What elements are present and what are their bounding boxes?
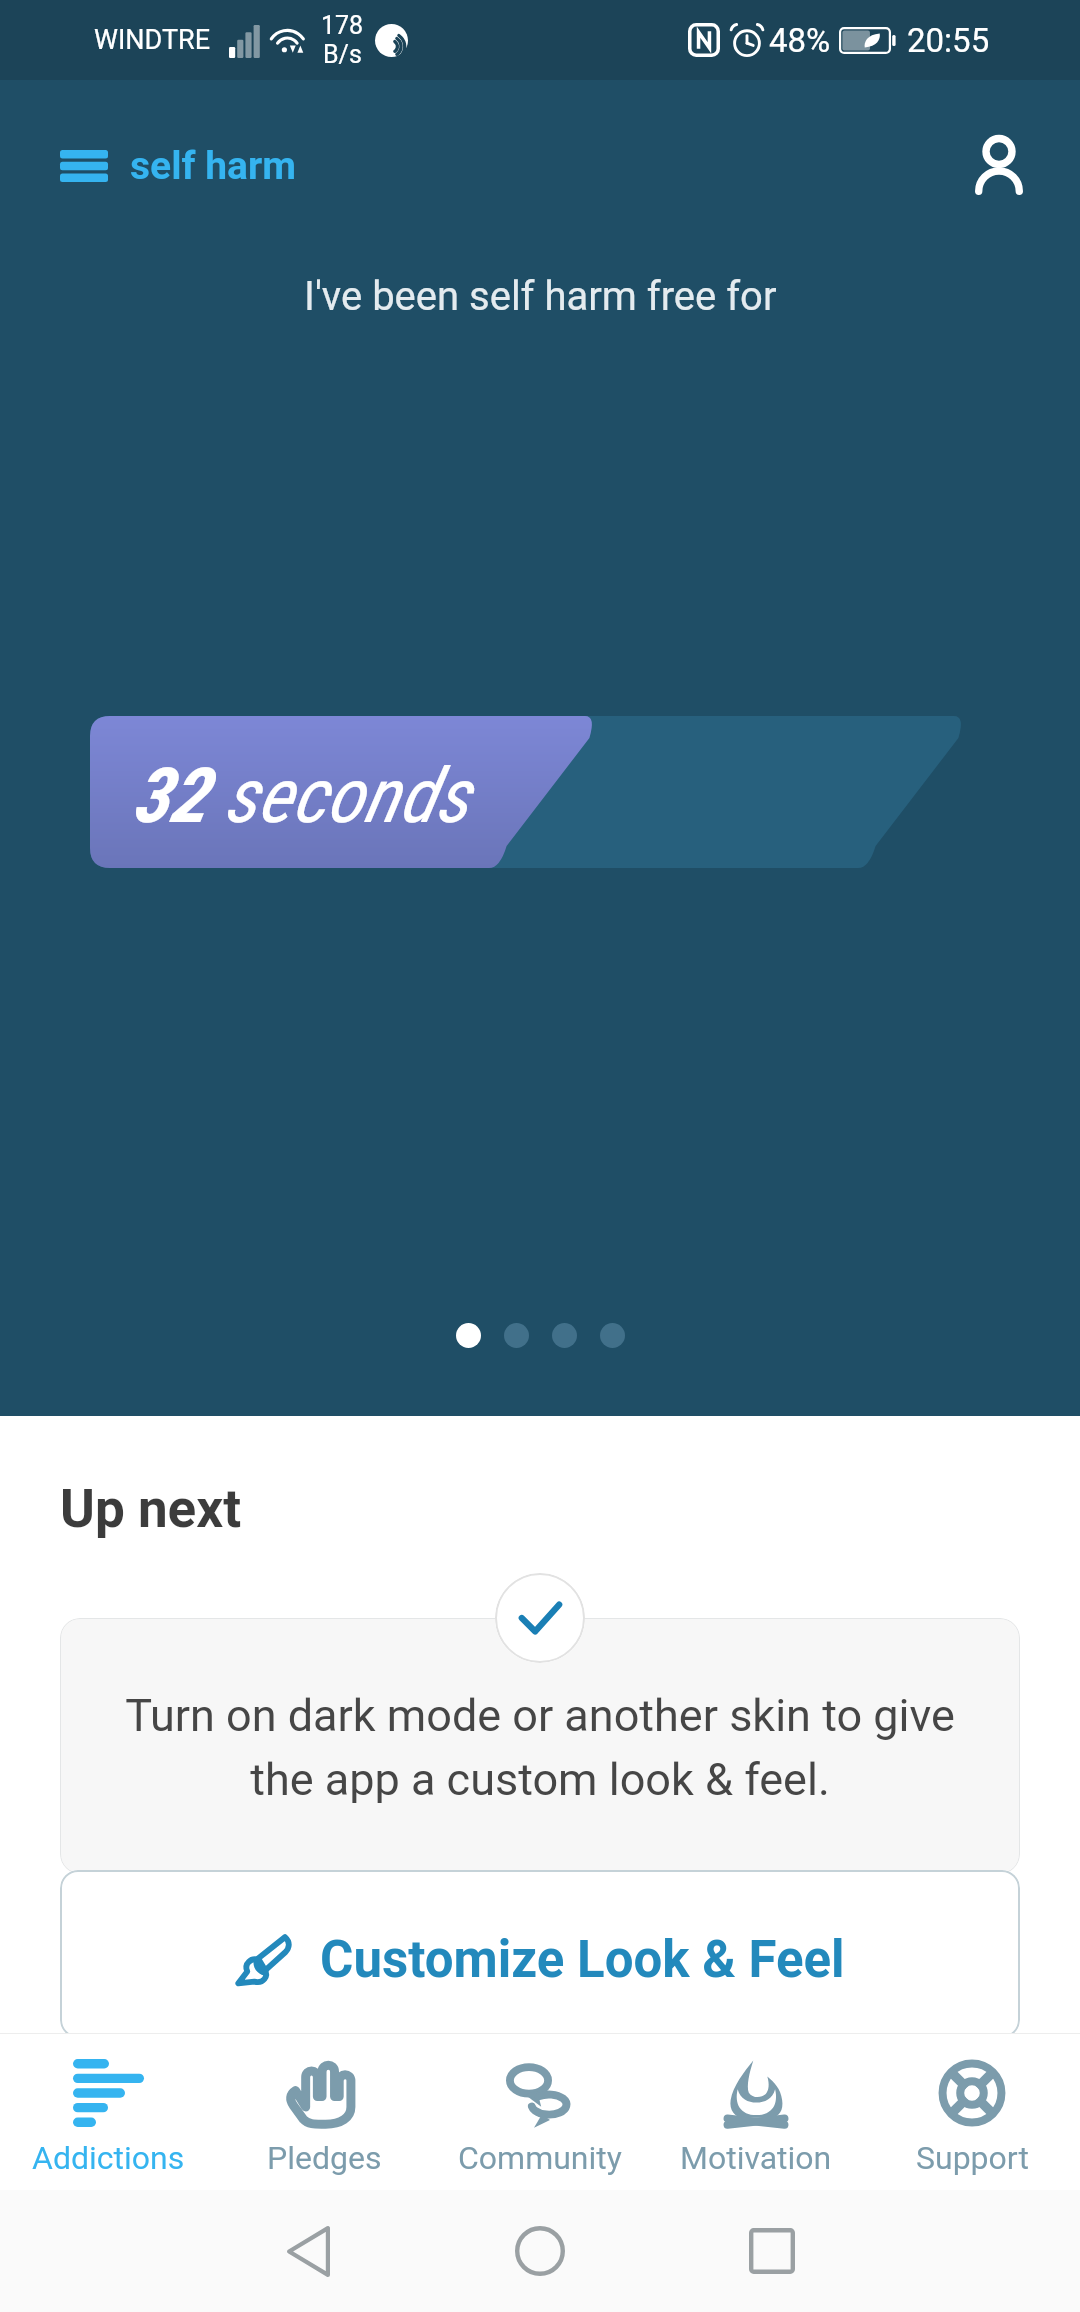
button[interactable]: Turn on dark mode or another skin to giv… bbox=[60, 1618, 1020, 1874]
button[interactable]: Account bbox=[955, 121, 1043, 209]
button[interactable] bbox=[504, 1323, 529, 1348]
button[interactable]: Support bbox=[864, 2034, 1080, 2190]
button[interactable]: Recent apps bbox=[696, 2190, 848, 2312]
button[interactable]: Home bbox=[464, 2190, 616, 2312]
staticText: Up next bbox=[60, 1478, 242, 1540]
button[interactable] bbox=[600, 1323, 625, 1348]
button[interactable]: Community bbox=[432, 2034, 648, 2190]
staticText: seconds bbox=[224, 751, 470, 840]
staticText: 20:55 bbox=[907, 21, 990, 60]
button[interactable]: Motivation bbox=[648, 2034, 864, 2190]
staticText: self harm bbox=[130, 143, 296, 189]
other: Open navigation menu bbox=[60, 150, 108, 182]
button[interactable]: Pledges bbox=[216, 2034, 432, 2190]
staticText: Turn on dark mode or another skin to giv… bbox=[118, 1689, 962, 1803]
button[interactable]: Customize Look & Feel bbox=[60, 1870, 1020, 2038]
button[interactable]: Addictions bbox=[0, 2034, 216, 2190]
button[interactable] bbox=[552, 1323, 577, 1348]
staticText: 178 bbox=[321, 11, 364, 40]
staticText: WINDTRE bbox=[94, 24, 211, 56]
staticText: Support bbox=[916, 2139, 1029, 2177]
staticText: Community bbox=[458, 2139, 622, 2177]
staticText: 32 bbox=[132, 751, 224, 840]
staticText: Motivation bbox=[680, 2139, 832, 2177]
button[interactable] bbox=[456, 1323, 481, 1348]
button[interactable]: Open navigation menu bbox=[24, 115, 332, 217]
button[interactable]: Mark as done bbox=[495, 1573, 585, 1663]
staticText: Pledges bbox=[267, 2139, 382, 2177]
staticText: B/s bbox=[323, 40, 362, 69]
staticText: I've been self harm free for bbox=[304, 273, 777, 320]
staticText: 48% bbox=[769, 21, 831, 60]
staticText: Customize Look & Feel bbox=[320, 1930, 845, 1990]
staticText: Addictions bbox=[32, 2139, 185, 2177]
button[interactable]: Back bbox=[232, 2190, 384, 2312]
